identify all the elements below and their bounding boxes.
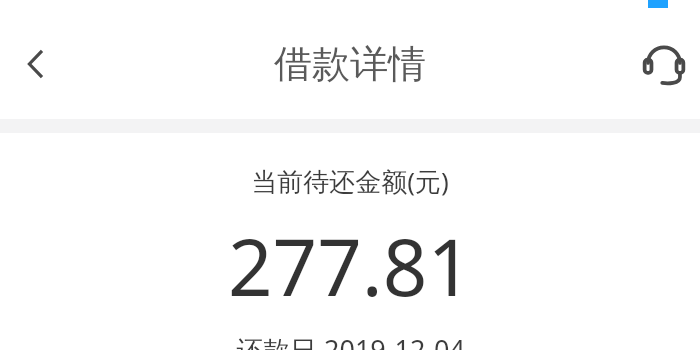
staticText: 借款详情 xyxy=(274,40,426,88)
button[interactable]: Back xyxy=(8,36,64,92)
staticText: 还款日 2019-12-04 xyxy=(236,331,465,350)
staticText: 当前待还金额(元) xyxy=(251,163,449,199)
staticText: 277.81 xyxy=(228,213,472,319)
button[interactable]: Customer service xyxy=(636,36,692,92)
